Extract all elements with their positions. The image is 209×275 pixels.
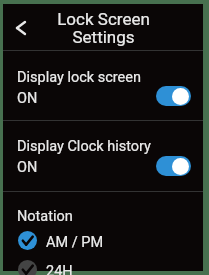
staticText: Lock Screen Settings xyxy=(57,9,150,47)
button[interactable]: Toggle Display lock screen xyxy=(156,86,191,106)
staticText: Notation xyxy=(17,208,73,225)
staticText: 24H xyxy=(46,263,73,275)
staticText: Display Clock history xyxy=(17,138,151,155)
button[interactable]: Toggle Display Clock history xyxy=(156,156,191,176)
button[interactable]: AM / PM xyxy=(3,231,203,250)
button[interactable] xyxy=(3,120,203,190)
staticText: ON xyxy=(17,159,38,176)
staticText: AM / PM xyxy=(46,234,104,251)
staticText: ON xyxy=(17,90,38,107)
button[interactable] xyxy=(3,51,203,121)
button[interactable]: 24H xyxy=(3,260,203,275)
button[interactable]: Back xyxy=(9,16,33,40)
staticText: Display lock screen xyxy=(17,69,142,86)
